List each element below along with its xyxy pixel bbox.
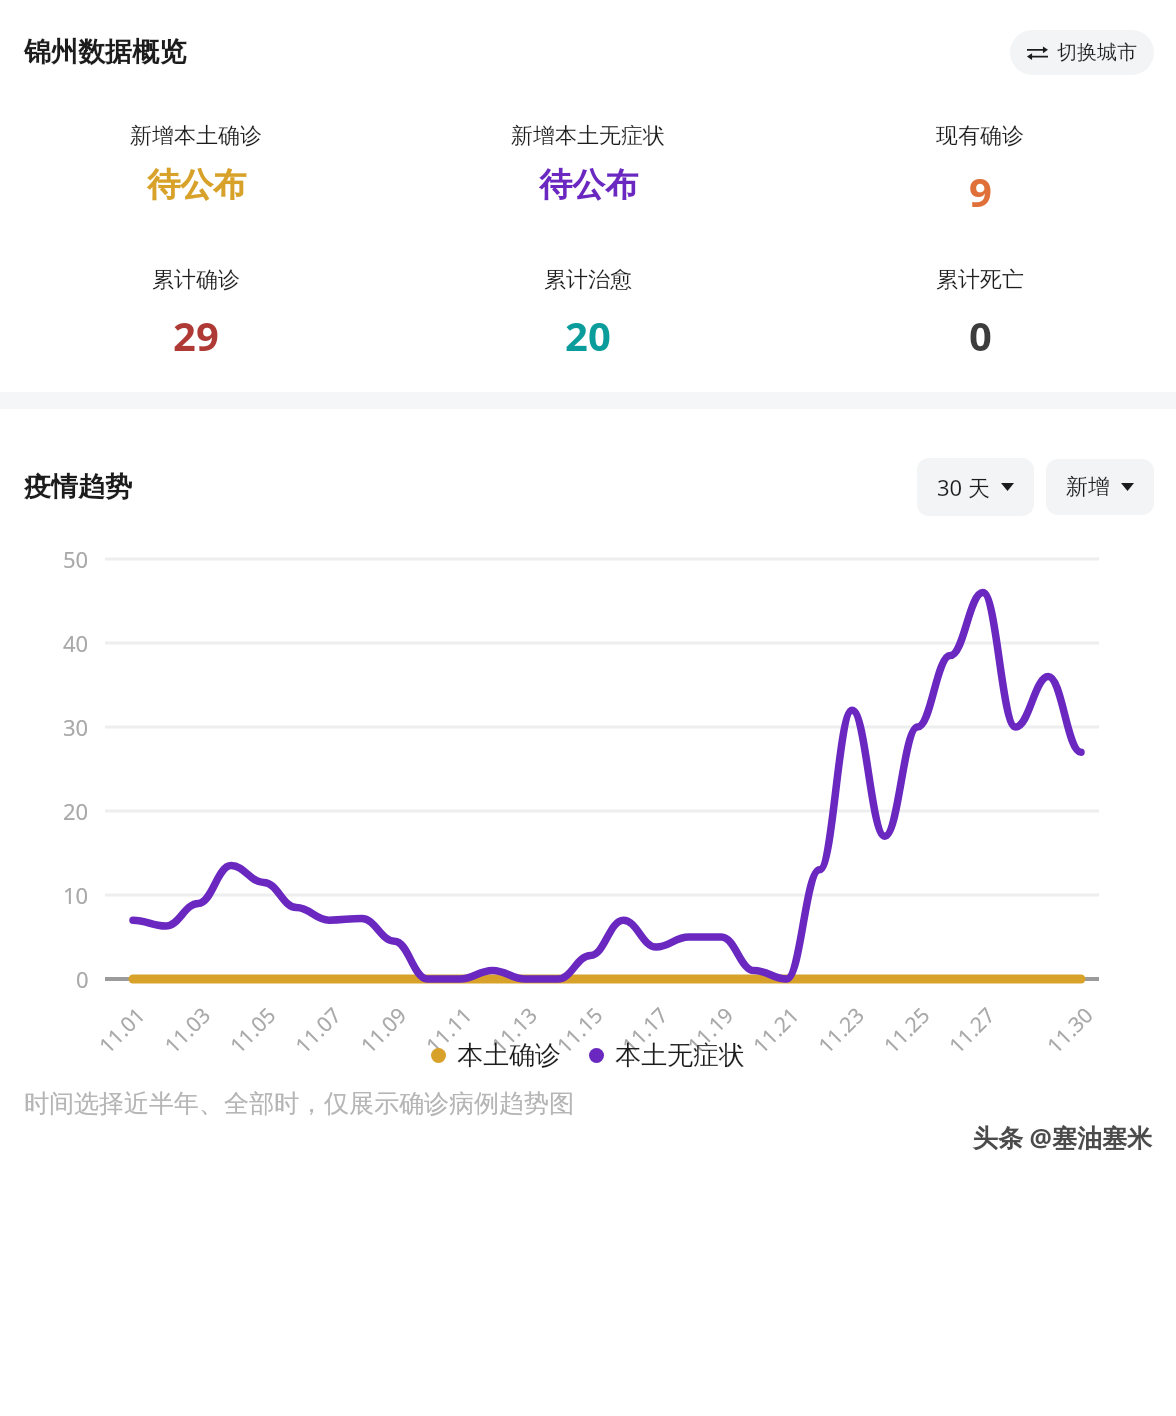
button[interactable]: 新增 — [1046, 459, 1154, 515]
staticText: 30 天 — [937, 472, 990, 502]
staticText: 29 — [173, 308, 219, 362]
staticText: 累计确诊 — [152, 266, 240, 294]
staticText: 头条 @塞油塞米 — [973, 1120, 1152, 1154]
button[interactable]: 累计确诊 — [0, 266, 392, 362]
staticText: 0 — [969, 308, 992, 362]
staticText: 锦州数据概览 — [24, 35, 186, 69]
staticText: 本土确诊 — [457, 1039, 561, 1072]
button[interactable]: 累计死亡 — [784, 266, 1176, 362]
button[interactable]: 30 天 — [917, 458, 1034, 516]
button[interactable]: 累计治愈 — [392, 266, 784, 362]
staticText: 待公布 — [147, 164, 246, 206]
staticText: 累计死亡 — [936, 266, 1024, 294]
staticText: 待公布 — [539, 164, 638, 206]
button[interactable]: 切换城市 — [1010, 30, 1154, 75]
staticText: 累计治愈 — [544, 266, 632, 294]
button[interactable]: 新增本土无症状 — [392, 122, 784, 206]
other: 切换城市 — [1027, 45, 1048, 61]
button[interactable]: 本土无症状 — [589, 1039, 745, 1072]
staticText: 疫情趋势 — [24, 470, 132, 504]
staticText: 本土无症状 — [615, 1039, 745, 1072]
staticText: 现有确诊 — [936, 122, 1024, 150]
staticText: 新增本土确诊 — [130, 122, 262, 150]
button[interactable]: 新增本土确诊 — [0, 122, 392, 206]
staticText: 20 — [565, 308, 611, 362]
staticText: 时间选择近半年、全部时，仅展示确诊病例趋势图 — [24, 1088, 574, 1119]
staticText: 新增本土无症状 — [511, 122, 665, 150]
staticText: 新增 — [1066, 473, 1110, 501]
staticText: 切换城市 — [1057, 40, 1137, 65]
button[interactable]: 现有确诊 — [784, 122, 1176, 218]
staticText: 9 — [969, 164, 992, 218]
button[interactable]: 本土确诊 — [431, 1039, 561, 1072]
